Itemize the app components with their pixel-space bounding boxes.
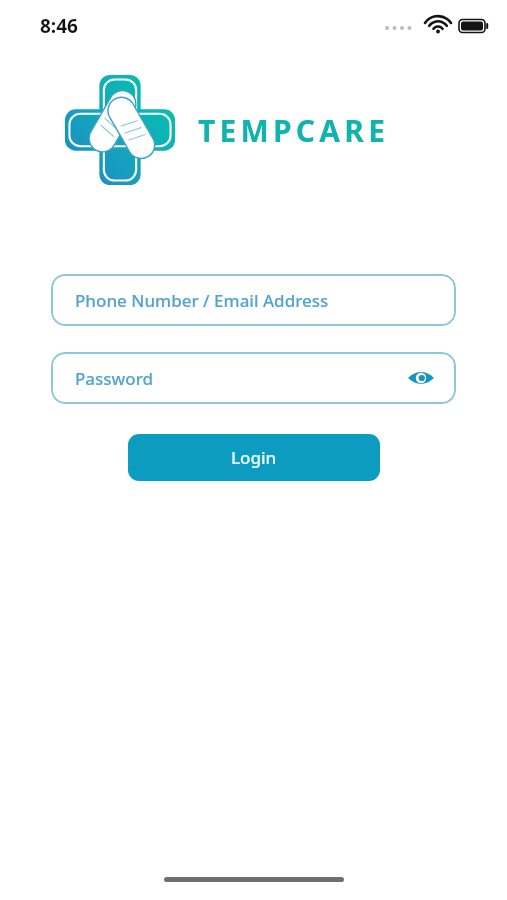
button[interactable]: Login — [128, 434, 380, 481]
staticText: 8:46 — [40, 13, 78, 39]
staticText: Login — [231, 446, 277, 469]
button[interactable]: Password — [51, 352, 456, 404]
staticText: Phone Number / Email Address — [75, 289, 329, 312]
button[interactable]: Phone Number / Email Address — [51, 274, 456, 326]
staticText: TEMPCARE — [198, 110, 390, 151]
staticText: Password — [75, 367, 154, 390]
button[interactable]: Show password — [404, 361, 438, 395]
